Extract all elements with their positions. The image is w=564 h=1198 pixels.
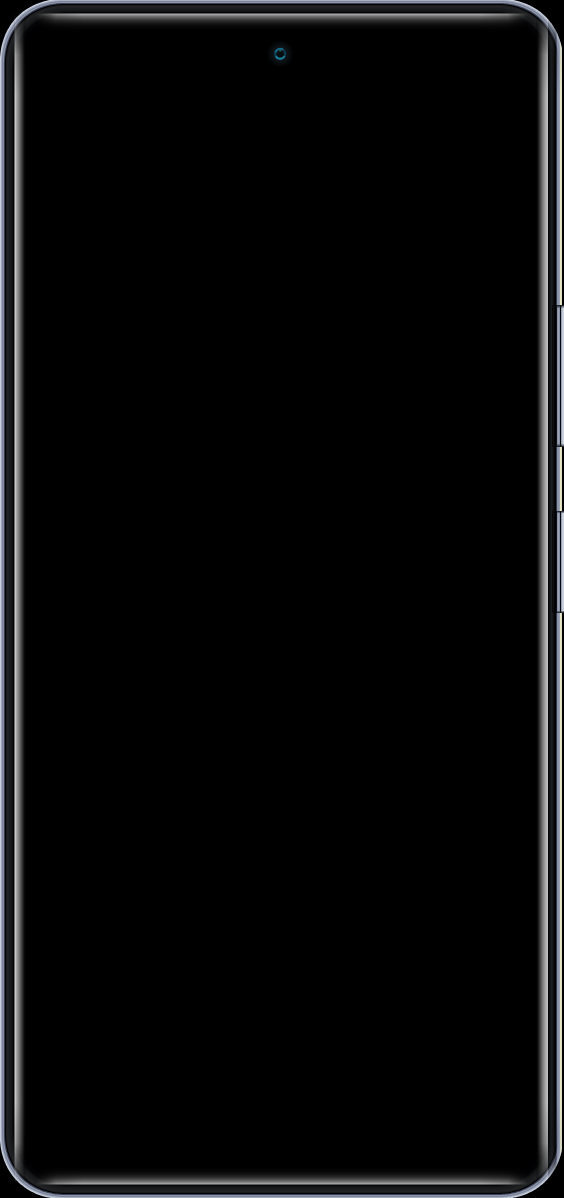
button[interactable]: Front camera	[268, 42, 292, 66]
button[interactable]: Power	[552, 511, 564, 613]
button[interactable]: Volume	[552, 305, 564, 447]
button[interactable]: Display, screen off	[14, 14, 548, 1184]
